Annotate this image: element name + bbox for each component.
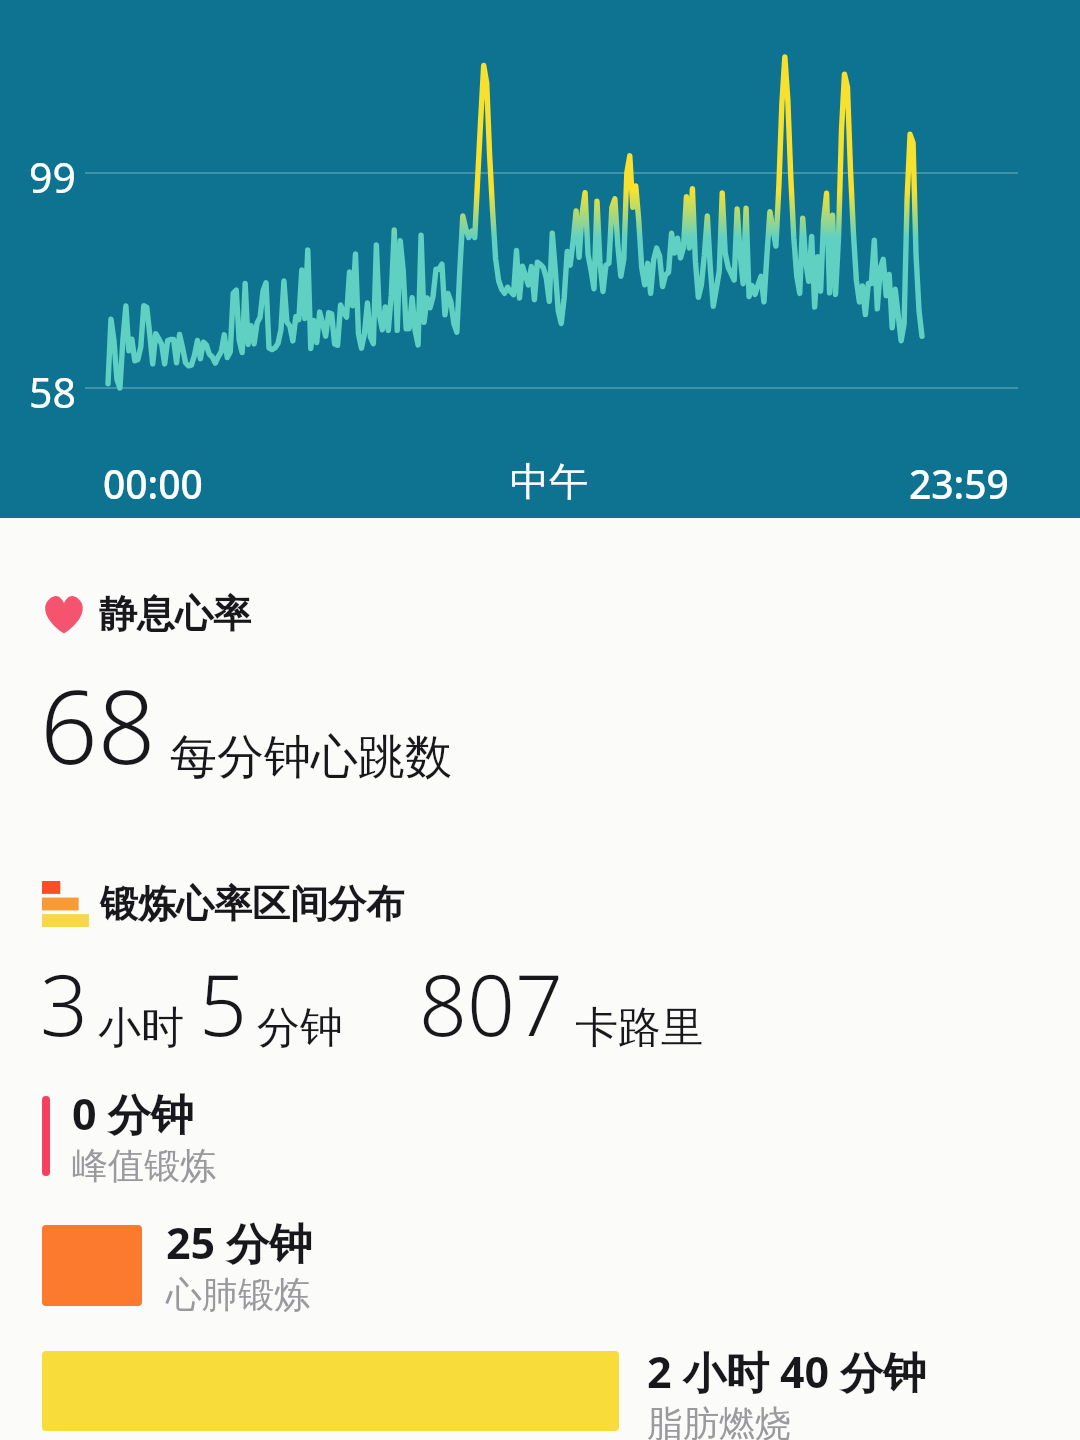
staticText: 静息心率: [99, 590, 251, 638]
staticText: 卡路里: [575, 1001, 704, 1055]
staticText: 68: [40, 656, 156, 794]
staticText: 5: [199, 946, 247, 1060]
staticText: 807: [419, 946, 563, 1060]
staticText: 心肺锻炼: [166, 1272, 310, 1317]
staticText: 23:59: [909, 457, 1009, 510]
staticText: 锻炼心率区间分布: [100, 880, 404, 928]
staticText: 3: [40, 946, 88, 1060]
button[interactable]: 锻炼心率区间分布: [0, 794, 1080, 928]
staticText: 58: [29, 364, 76, 420]
button[interactable]: 静息心率: [0, 518, 1080, 638]
button[interactable]: 0 分钟: [0, 1060, 1080, 1188]
button[interactable]: 2 小时 40 分钟: [0, 1317, 1080, 1440]
staticText: 中午: [510, 457, 588, 506]
staticText: 小时: [98, 1001, 184, 1055]
staticText: 25 分钟: [166, 1213, 313, 1272]
staticText: 0 分钟: [72, 1084, 194, 1143]
staticText: 99: [29, 149, 76, 205]
staticText: 2 小时 40 分钟: [647, 1342, 927, 1401]
button[interactable]: 25 分钟: [0, 1188, 1080, 1317]
staticText: 峰值锻炼: [72, 1143, 216, 1188]
staticText: 每分钟心跳数: [170, 728, 452, 787]
staticText: 分钟: [257, 1001, 343, 1055]
staticText: 脂肪燃烧: [647, 1401, 791, 1440]
staticText: 00:00: [103, 457, 203, 510]
